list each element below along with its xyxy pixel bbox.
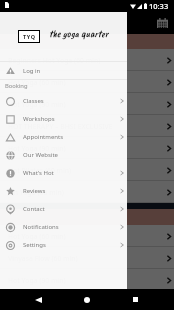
button[interactable]: Vinyasa Flow (60 min) — [0, 247, 174, 269]
button[interactable]: Calendar — [154, 15, 170, 31]
staticText: 10:33 — [149, 1, 169, 11]
staticText: Notifications — [23, 223, 59, 231]
button[interactable]: Hot Yoga (60 min) — [0, 225, 174, 247]
staticText: Reviews — [23, 187, 46, 195]
button[interactable]: Classes — [0, 92, 127, 110]
staticText: Classes — [23, 97, 44, 105]
button[interactable]: HOT THERAPY – BHSI EXCLUSIVE — [0, 115, 174, 137]
staticText: Hot Yoga (60 min) — [8, 78, 66, 87]
button[interactable]: Notifications — [0, 218, 127, 236]
button[interactable]: Hot Yoga (90 min) — [0, 269, 174, 291]
staticText: the yoga quarter — [49, 27, 109, 40]
button[interactable]: Hot Yoga (90 min) — [0, 93, 174, 115]
button[interactable]: Workshops — [0, 110, 127, 128]
staticText: Hot Yoga (90 min) — [8, 144, 66, 153]
staticText: Contact — [23, 205, 45, 213]
staticText: Beginners Hot Yoga (60 min) — [8, 56, 101, 65]
staticText: Yin Yoga (60 min) — [8, 188, 64, 197]
button[interactable]: Home — [77, 289, 96, 310]
staticText: Settings — [23, 241, 46, 249]
staticText: Hot Pilates (60 min) — [8, 166, 72, 175]
staticText: Log in — [23, 67, 41, 75]
staticText: TYQ — [23, 33, 36, 40]
staticText: Hot Yoga (90 min) — [8, 100, 66, 109]
button[interactable]: Log in — [0, 62, 127, 79]
button[interactable]: Appointments — [0, 128, 127, 146]
staticText: Appointments — [23, 133, 64, 141]
button[interactable]: Yin Yoga (60 min) — [0, 181, 174, 203]
button[interactable]: What's Hot — [0, 164, 127, 182]
button[interactable]: Back — [29, 289, 48, 310]
button[interactable]: Hot Yoga (90 min) — [0, 137, 174, 159]
button[interactable]: Our Website — [0, 146, 127, 164]
button[interactable]: Hot Yoga (60 min) — [0, 71, 174, 93]
button[interactable]: Settings — [0, 236, 127, 254]
button[interactable]: Contact — [0, 200, 127, 218]
staticText: What's Hot — [23, 169, 54, 177]
button[interactable]: Reviews — [0, 182, 127, 200]
staticText: Booking — [5, 82, 28, 90]
staticText: Workshops — [23, 115, 55, 123]
button[interactable]: Beginners Hot Yoga (60 min) — [0, 49, 174, 71]
staticText: HOT THERAPY – BHSI EXCLUSIVE — [8, 122, 113, 131]
staticText: Our Website — [23, 151, 58, 159]
button[interactable]: Hot Pilates (60 min) — [0, 159, 174, 181]
button[interactable]: Recent apps — [126, 289, 145, 310]
